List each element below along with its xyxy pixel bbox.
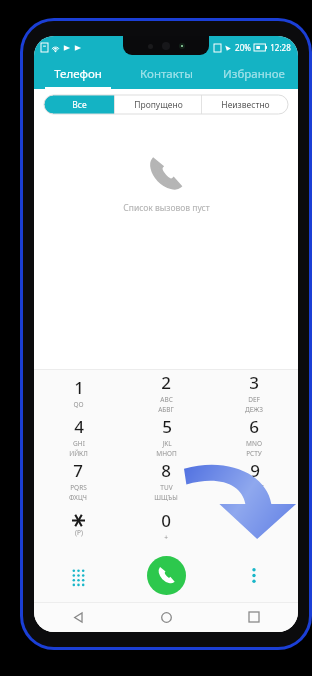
button[interactable]: 1 <box>34 370 122 414</box>
staticText: Контакты <box>140 66 193 82</box>
staticText: ШЩЪЫ <box>154 493 178 502</box>
staticText: TUV <box>160 483 173 492</box>
button[interactable]: Home <box>122 602 210 632</box>
button[interactable]: Back <box>34 602 122 632</box>
staticText: 7 <box>73 459 83 482</box>
staticText: ИЙКЛ <box>69 449 88 458</box>
button[interactable]: Recents <box>210 602 298 632</box>
staticText: Все <box>72 99 87 111</box>
staticText: 5 <box>162 415 172 438</box>
staticText: MNO <box>246 439 262 448</box>
staticText: АБВГ <box>158 405 174 414</box>
staticText: DEF <box>248 395 260 404</box>
staticText: Пропущено <box>134 99 183 111</box>
staticText: Неизвестно <box>221 99 270 111</box>
staticText: 12:28 <box>270 42 291 53</box>
staticText: ABC <box>160 395 173 404</box>
staticText: (P) <box>75 528 83 537</box>
staticText: PQRS <box>70 483 87 492</box>
button[interactable]: Неизвестно <box>202 95 288 114</box>
button[interactable]: 5 <box>122 414 210 458</box>
button[interactable]: Все <box>44 95 114 114</box>
button[interactable]: 4 <box>34 414 122 458</box>
button[interactable]: 3 <box>210 370 298 414</box>
button[interactable] <box>210 503 298 548</box>
button[interactable]: 8 <box>122 458 210 503</box>
button[interactable]: More options <box>210 548 298 602</box>
button[interactable]: 9 <box>210 458 298 503</box>
staticText: + <box>164 533 168 542</box>
button[interactable]: 0 <box>122 503 210 548</box>
button[interactable]: 2 <box>122 370 210 414</box>
staticText: ДЕЖЗ <box>245 405 263 414</box>
staticText: 0 <box>161 509 171 532</box>
staticText: 3 <box>249 371 259 394</box>
button[interactable]: Call <box>147 556 186 595</box>
staticText: QO <box>73 400 84 409</box>
staticText: РСТУ <box>246 449 262 458</box>
staticText: ФХЦЧ <box>69 493 87 502</box>
staticText: ЬЭЮЯ <box>245 493 264 502</box>
button[interactable]: (P) <box>34 503 122 548</box>
staticText: 8 <box>161 459 171 482</box>
staticText: МНОП <box>156 449 177 458</box>
button[interactable]: Пропущено <box>115 95 201 114</box>
button[interactable]: 7 <box>34 458 122 503</box>
staticText: 6 <box>249 415 259 438</box>
button[interactable]: Контакты <box>122 58 210 89</box>
staticText: JKL <box>162 439 172 448</box>
staticText: 9 <box>250 459 260 482</box>
staticText: 2 <box>161 371 171 394</box>
staticText: 4 <box>74 415 84 438</box>
staticText: WXYZ <box>246 483 264 492</box>
staticText: Избранное <box>223 66 285 82</box>
button[interactable]: 6 <box>210 414 298 458</box>
staticText: Список вызовов пуст <box>123 202 210 214</box>
button[interactable]: Избранное <box>210 58 298 89</box>
staticText: GHI <box>73 439 85 448</box>
staticText: 20% <box>235 42 251 53</box>
staticText: Телефон <box>54 66 102 82</box>
button[interactable]: Телефон <box>34 58 122 89</box>
button[interactable]: Keypad <box>34 548 122 602</box>
staticText: 1 <box>74 376 84 399</box>
